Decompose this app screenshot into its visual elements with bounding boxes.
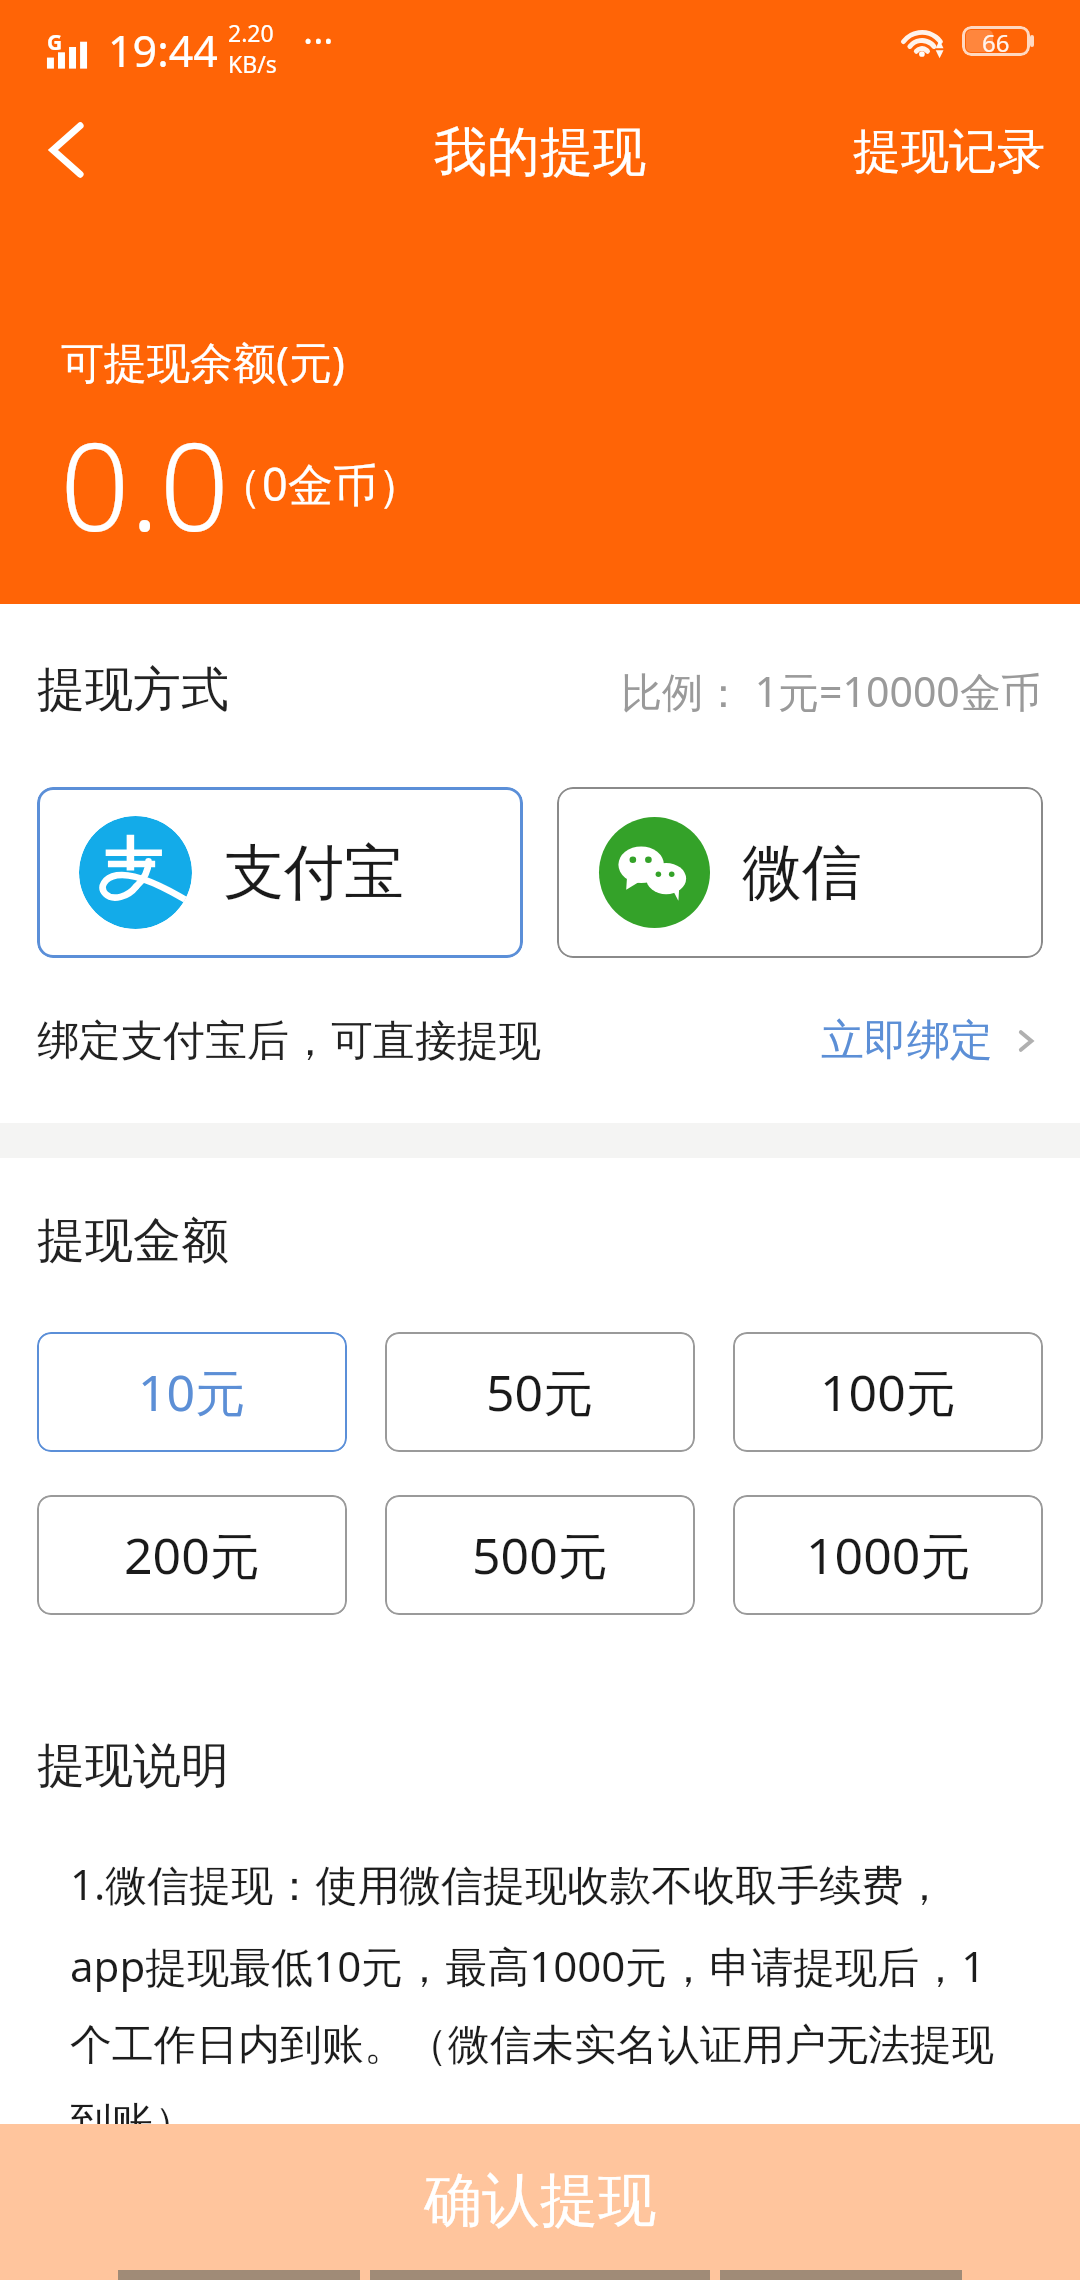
button[interactable]: 500元 <box>385 1495 695 1615</box>
staticText: 1.微信提现：使用微信提现收款不收取手续费， <box>70 1855 946 1912</box>
staticText: 微信 <box>742 835 862 911</box>
button[interactable]: 支付宝 <box>37 787 523 958</box>
staticText: 我的提现 <box>434 119 646 186</box>
staticText: 2.20 <box>228 17 274 48</box>
staticText: 10元 <box>138 1358 246 1426</box>
button[interactable]: 100元 <box>733 1332 1043 1452</box>
staticText: 0.0 <box>60 401 230 567</box>
staticText: 提现说明 <box>37 1736 229 1796</box>
button[interactable]: 立即绑定 <box>821 1003 1043 1079</box>
staticText: app提现最低10元，最高1000元，申请提现后，1 <box>70 1937 986 1994</box>
button[interactable]: 50元 <box>385 1332 695 1452</box>
staticText: G <box>47 28 63 57</box>
staticText: 200元 <box>124 1521 260 1589</box>
staticText: 比例： 1元=10000金币 <box>621 663 1042 719</box>
staticText: 50元 <box>486 1358 594 1426</box>
button[interactable]: 10元 <box>37 1332 347 1452</box>
button[interactable]: 确认提现 <box>0 2124 1080 2280</box>
button[interactable]: 200元 <box>37 1495 347 1615</box>
staticText: 500元 <box>472 1521 608 1589</box>
staticText: 个工作日内到账。（微信未实名认证用户无法提现 <box>70 2019 994 2072</box>
button[interactable]: 提现记录 <box>818 104 1080 200</box>
staticText: 提现记录 <box>853 122 1045 182</box>
staticText: 100元 <box>820 1358 956 1426</box>
staticText: 可提现余额(元) <box>61 332 345 391</box>
staticText: 66 <box>982 26 1010 56</box>
button[interactable]: Back <box>0 104 130 200</box>
staticText: 19:44 <box>108 21 218 80</box>
staticText: 提现金额 <box>37 1211 229 1271</box>
staticText: 到账） <box>70 2097 196 2150</box>
staticText: 确认提现 <box>424 2164 656 2237</box>
staticText: 提现方式 <box>37 660 229 720</box>
staticText: 绑定支付宝后，可直接提现 <box>37 1015 541 1068</box>
staticText: 立即绑定 <box>821 1014 993 1068</box>
button[interactable]: 1000元 <box>733 1495 1043 1615</box>
button[interactable]: 微信 <box>557 787 1043 958</box>
staticText: （0金币） <box>217 453 423 514</box>
staticText: 1000元 <box>806 1521 971 1589</box>
staticText: 支付宝 <box>224 835 404 911</box>
staticText: KB/s <box>228 48 277 79</box>
staticText: ··· <box>303 14 334 66</box>
